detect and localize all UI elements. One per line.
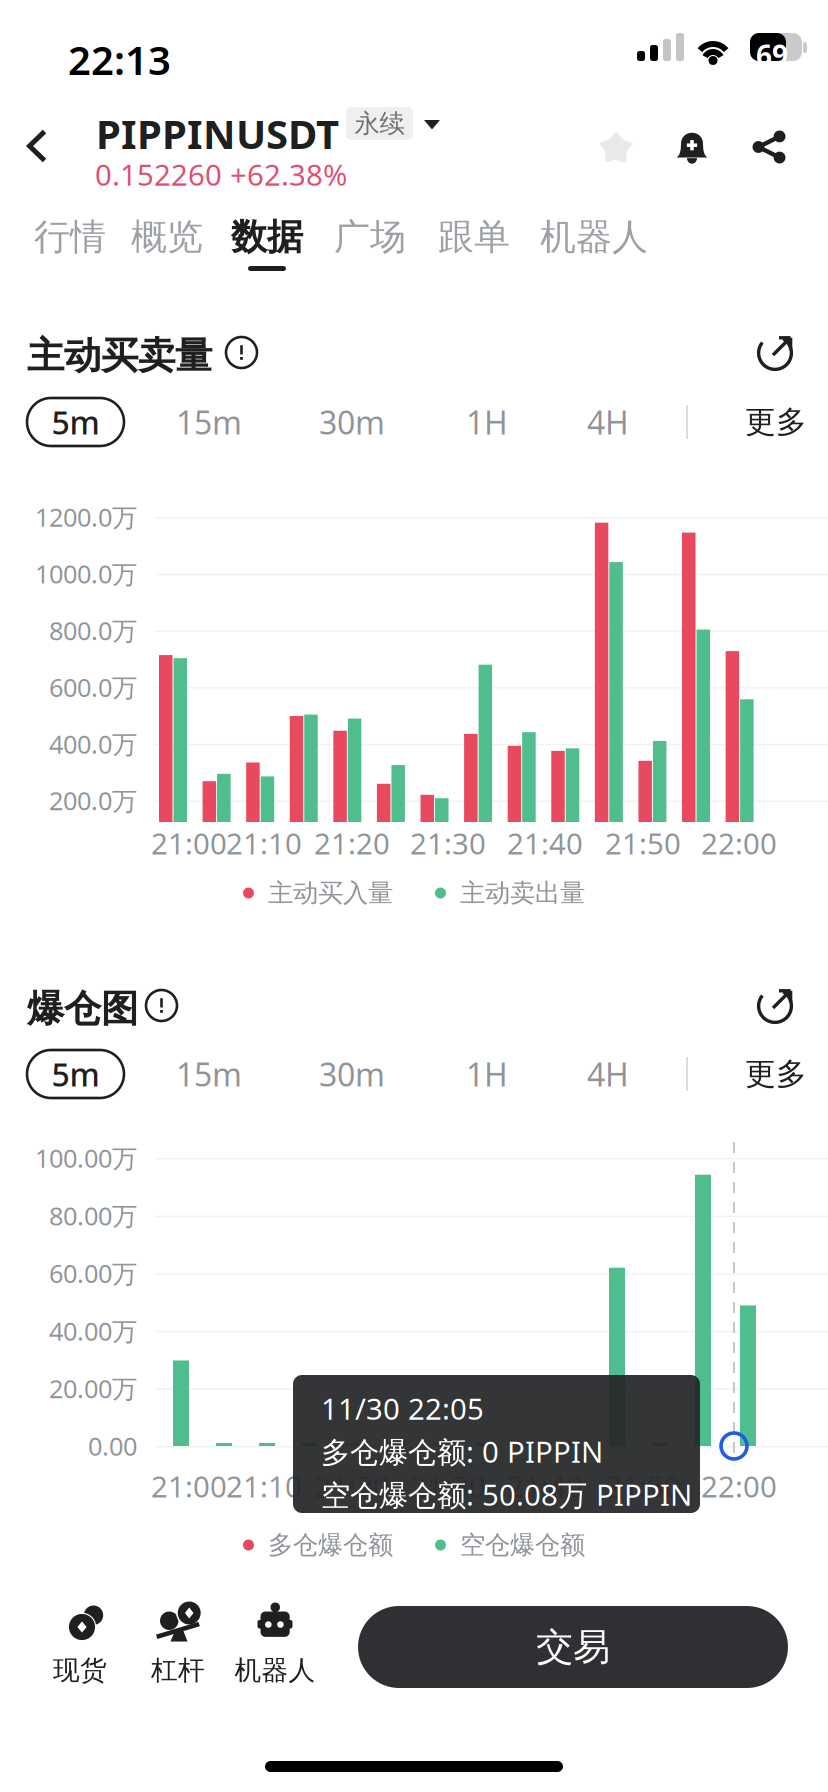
button[interactable]: Share: [732, 110, 806, 184]
staticText: 交易: [536, 1624, 610, 1670]
button[interactable]: Favorite: [579, 110, 653, 184]
button[interactable]: 现货: [30, 1598, 130, 1690]
button[interactable]: 5m: [27, 1050, 124, 1098]
staticText: 爆仓图: [27, 986, 138, 1032]
staticText: 400.0万: [49, 727, 137, 761]
staticText: 空仓爆仓额: [460, 1529, 585, 1560]
button[interactable]: 机器人: [220, 1598, 330, 1690]
staticText: 21:00: [151, 1466, 227, 1505]
button[interactable]: 4H: [571, 398, 645, 446]
button[interactable]: 杠杆: [128, 1598, 228, 1690]
staticText: 22:13: [68, 33, 171, 86]
staticText: 0.00: [88, 1429, 137, 1463]
button[interactable]: 30m: [303, 398, 401, 446]
staticText: 5m: [51, 1053, 99, 1095]
button[interactable]: Open full chart: [744, 975, 806, 1037]
staticText: 现货: [53, 1654, 107, 1687]
staticText: 21:20: [314, 823, 390, 862]
button[interactable]: 广场: [334, 213, 406, 279]
staticText: 数据: [231, 215, 303, 259]
button[interactable]: 1H: [450, 1050, 524, 1098]
staticText: 21:30: [410, 823, 486, 862]
button[interactable]: 4H: [571, 1050, 645, 1098]
staticText: 多仓爆仓额: [268, 1529, 393, 1560]
button[interactable]: 5m: [27, 398, 124, 446]
button[interactable]: 数据: [231, 213, 303, 279]
staticText: 更多: [745, 1055, 807, 1093]
staticText: 15m: [176, 401, 242, 443]
staticText: 15m: [176, 1053, 242, 1095]
button[interactable]: 行情: [34, 213, 106, 279]
button[interactable]: 30m: [303, 1050, 401, 1098]
staticText: 21:20: [314, 1466, 390, 1505]
staticText: 30m: [319, 1053, 385, 1095]
staticText: 60.00万: [49, 1256, 137, 1290]
staticText: 1H: [466, 1053, 508, 1095]
staticText: 11/30 22:05: [321, 1389, 484, 1428]
staticText: 广场: [334, 215, 406, 259]
staticText: 主动卖出量: [460, 877, 585, 908]
button[interactable]: 更多: [736, 1050, 816, 1098]
button[interactable]: Price alert: [655, 110, 729, 184]
staticText: 21:40: [507, 1466, 583, 1505]
staticText: 21:10: [226, 823, 302, 862]
staticText: 800.0万: [49, 614, 137, 647]
staticText: 1200.0万: [35, 500, 137, 534]
staticText: 600.0万: [49, 670, 137, 704]
staticText: 机器人: [234, 1654, 315, 1687]
staticText: 30m: [319, 401, 385, 443]
staticText: 21:30: [410, 1466, 486, 1505]
staticText: 更多: [745, 403, 807, 441]
staticText: 永续: [354, 108, 404, 139]
staticText: 21:50: [605, 1466, 681, 1505]
staticText: 20.00万: [49, 1372, 137, 1405]
button[interactable]: 15m: [161, 398, 257, 446]
staticText: 80.00万: [49, 1199, 137, 1232]
button[interactable]: 更多: [736, 398, 816, 446]
button[interactable]: 机器人: [542, 213, 646, 279]
staticText: 0.152260 +62.38%: [95, 155, 347, 194]
button[interactable]: 15m: [161, 1050, 257, 1098]
staticText: 21:40: [507, 823, 583, 862]
staticText: 跟单: [438, 215, 510, 259]
staticText: 22:00: [701, 823, 777, 862]
button[interactable]: Back: [6, 110, 68, 182]
staticText: 1000.0万: [35, 557, 137, 590]
staticText: 22:00: [701, 1466, 777, 1505]
button[interactable]: 概览: [131, 213, 203, 279]
staticText: 21:00: [151, 823, 227, 862]
staticText: PIPPINUSDT: [96, 107, 339, 160]
staticText: 杠杆: [151, 1654, 205, 1687]
staticText: 主动买入量: [268, 877, 393, 908]
staticText: 行情: [34, 215, 106, 259]
staticText: 1H: [466, 401, 508, 443]
staticText: 40.00万: [49, 1314, 137, 1348]
staticText: 机器人: [540, 215, 648, 259]
staticText: 69: [756, 36, 788, 73]
staticText: 主动买卖量: [27, 333, 212, 379]
staticText: 4H: [587, 1053, 629, 1095]
staticText: 21:50: [605, 823, 681, 862]
button[interactable]: 跟单: [438, 213, 510, 279]
button[interactable]: Open full chart: [744, 322, 806, 384]
staticText: 多仓爆仓额: 0 PIPPIN: [321, 1432, 603, 1471]
staticText: 21:10: [226, 1466, 302, 1505]
button[interactable]: 1H: [450, 398, 524, 446]
staticText: 100.00万: [35, 1141, 137, 1175]
button[interactable]: 交易: [358, 1606, 788, 1688]
staticText: 200.0万: [49, 784, 137, 817]
staticText: 概览: [131, 215, 203, 259]
staticText: 空仓爆仓额: 50.08万 PIPPIN: [321, 1475, 692, 1514]
staticText: 4H: [587, 401, 629, 443]
staticText: 5m: [51, 401, 99, 443]
button[interactable]: 永续: [346, 107, 456, 157]
